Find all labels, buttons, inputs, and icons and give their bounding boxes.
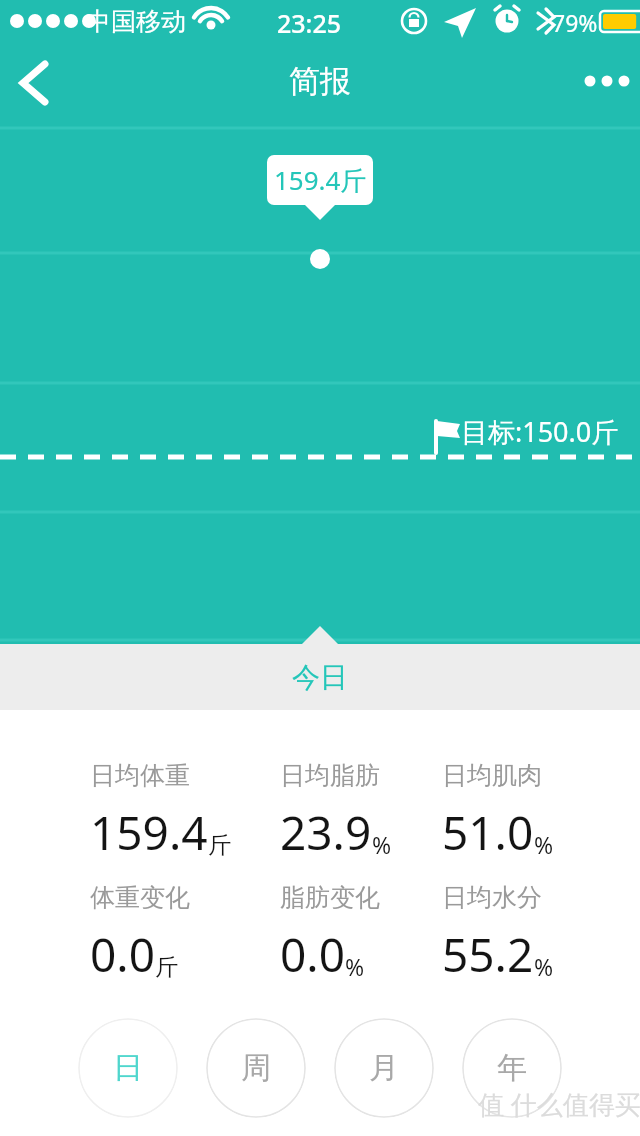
staticText: 159.4斤: [274, 162, 367, 198]
button[interactable]: 周: [206, 1018, 306, 1118]
staticText: 55.2: [442, 923, 534, 986]
staticText: 今日: [292, 660, 348, 695]
staticText: 体重变化: [90, 882, 190, 913]
staticText: 79%: [552, 7, 598, 38]
staticText: 中国移动: [86, 6, 186, 37]
staticText: 目标:150.0斤: [461, 413, 619, 450]
button[interactable]: 年: [462, 1018, 562, 1118]
staticText: 日均水分: [442, 882, 542, 913]
button[interactable]: 日: [78, 1018, 178, 1118]
staticText: 斤: [155, 953, 178, 982]
button[interactable]: More options: [560, 51, 640, 111]
staticText: 日均体重: [90, 760, 190, 791]
staticText: 23:25: [277, 6, 342, 40]
staticText: %: [534, 829, 554, 860]
staticText: 脂肪变化: [280, 882, 380, 913]
staticText: 值 什么值得买: [478, 1086, 640, 1122]
staticText: 23.9: [280, 801, 372, 864]
staticText: 51.0: [442, 801, 534, 864]
staticText: 0.0: [280, 923, 345, 986]
staticText: 日: [113, 1049, 143, 1087]
staticText: 年: [497, 1049, 527, 1087]
staticText: %: [345, 951, 365, 982]
staticText: 斤: [208, 831, 231, 860]
staticText: 周: [241, 1049, 271, 1087]
staticText: 159.4: [90, 801, 208, 864]
staticText: 0.0: [90, 923, 155, 986]
button[interactable]: 今日: [0, 644, 640, 710]
staticText: 日均脂肪: [280, 760, 380, 791]
staticText: 简报: [289, 62, 351, 101]
staticText: %: [372, 829, 392, 860]
staticText: 月: [369, 1049, 399, 1087]
staticText: 日均肌肉: [442, 760, 542, 791]
button[interactable]: Back: [0, 44, 76, 120]
button[interactable]: 月: [334, 1018, 434, 1118]
staticText: %: [534, 951, 554, 982]
